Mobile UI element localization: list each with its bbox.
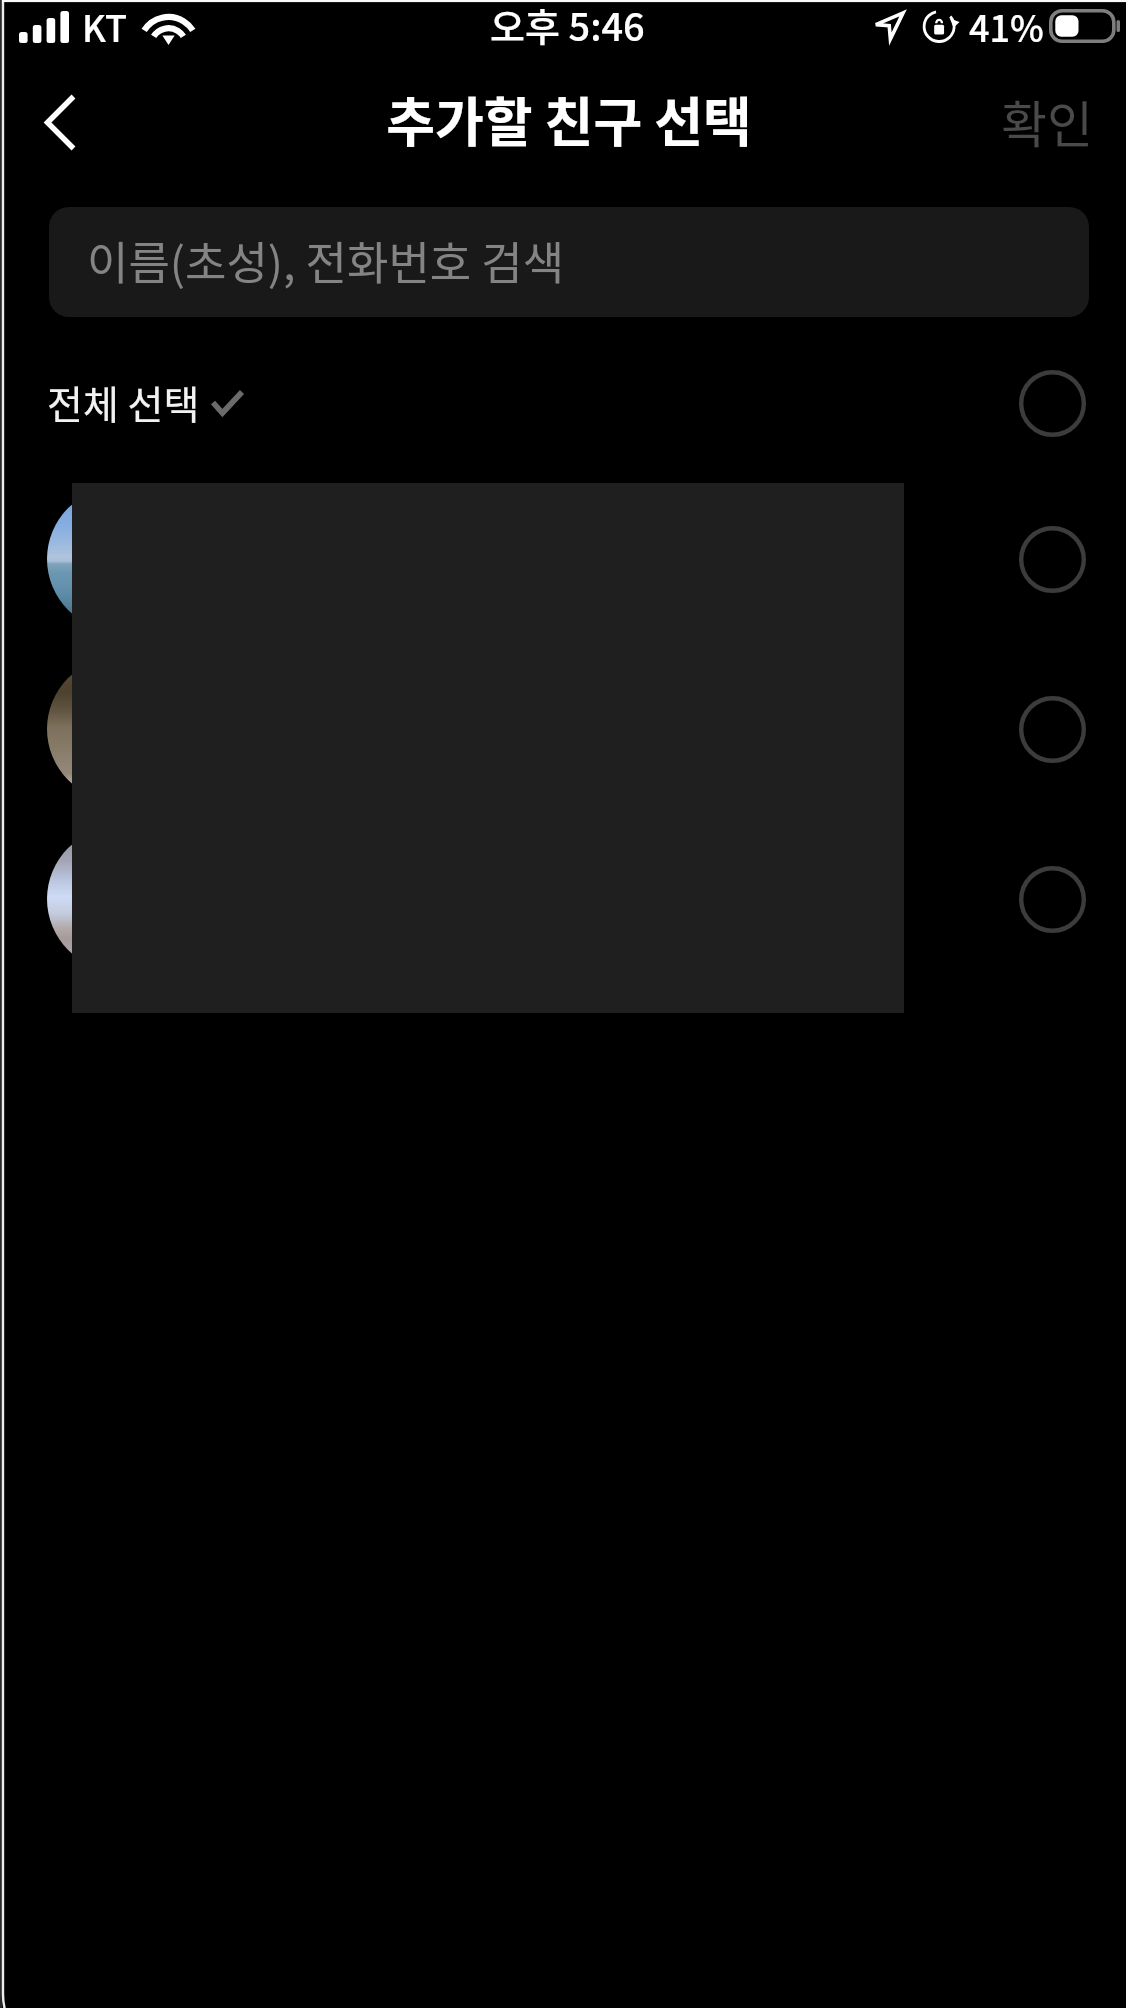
button[interactable]: Select [0, 474, 1126, 644]
button[interactable]: Select [0, 644, 1126, 814]
other: Rotation lock [924, 10, 960, 43]
button[interactable]: Select [1006, 357, 1098, 449]
staticText: 확인 [1001, 85, 1093, 157]
button[interactable]: Select [1006, 683, 1098, 775]
button[interactable]: Select [1006, 853, 1098, 945]
button[interactable]: Select [0, 814, 1126, 984]
staticText: 오후 5:46 [490, 0, 645, 52]
staticText: 41% [969, 0, 1044, 52]
button[interactable]: 전체 선택 [0, 317, 1126, 474]
other: Location [875, 12, 904, 40]
staticText: 전체 선택 [47, 374, 200, 430]
staticText: KT [82, 0, 128, 52]
button[interactable]: Select [1006, 513, 1098, 605]
staticText: 추가할 친구 선택 [386, 81, 752, 158]
button[interactable]: 이름(초성), 전화번호 검색 [49, 207, 1089, 317]
button[interactable]: Back [8, 70, 112, 174]
staticText: 이름(초성), 전화번호 검색 [87, 228, 565, 293]
button[interactable]: 확인 [968, 66, 1126, 178]
